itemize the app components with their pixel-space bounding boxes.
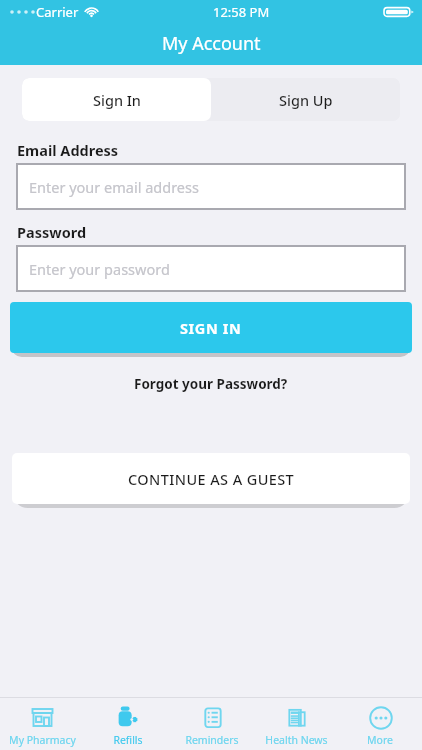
staticText: Enter your password (29, 259, 170, 279)
staticText: Sign In (93, 90, 141, 110)
button[interactable]: Reminders (170, 701, 254, 747)
staticText: Sign Up (279, 90, 333, 110)
button[interactable]: Sign Up (211, 78, 400, 121)
staticText: More (367, 733, 393, 747)
button[interactable]: Enter your password (17, 246, 405, 291)
staticText: My Pharmacy (9, 733, 76, 747)
button[interactable]: My Pharmacy (0, 701, 85, 747)
staticText: My Account (162, 31, 261, 56)
staticText: SIGN IN (180, 318, 242, 338)
button[interactable]: More (338, 701, 422, 747)
staticText: Refills (113, 733, 143, 747)
staticText: 12:58 PM (213, 3, 270, 21)
button[interactable]: Forgot your Password? (126, 371, 296, 397)
staticText: Forgot your Password? (134, 375, 288, 393)
button[interactable]: Health News (254, 701, 338, 747)
staticText: Reminders (185, 733, 239, 747)
staticText: Health News (265, 733, 328, 747)
button[interactable]: Enter your email address (17, 164, 405, 209)
staticText: Enter your email address (29, 177, 199, 197)
staticText: Password (17, 222, 87, 242)
button[interactable]: Refills (85, 701, 170, 747)
staticText: CONTINUE AS A GUEST (128, 469, 295, 489)
button[interactable]: SIGN IN (10, 302, 412, 353)
staticText: Carrier (36, 3, 79, 21)
button[interactable]: CONTINUE AS A GUEST (12, 453, 410, 504)
staticText: Email Address (17, 140, 119, 160)
button[interactable]: Sign In (22, 78, 211, 121)
